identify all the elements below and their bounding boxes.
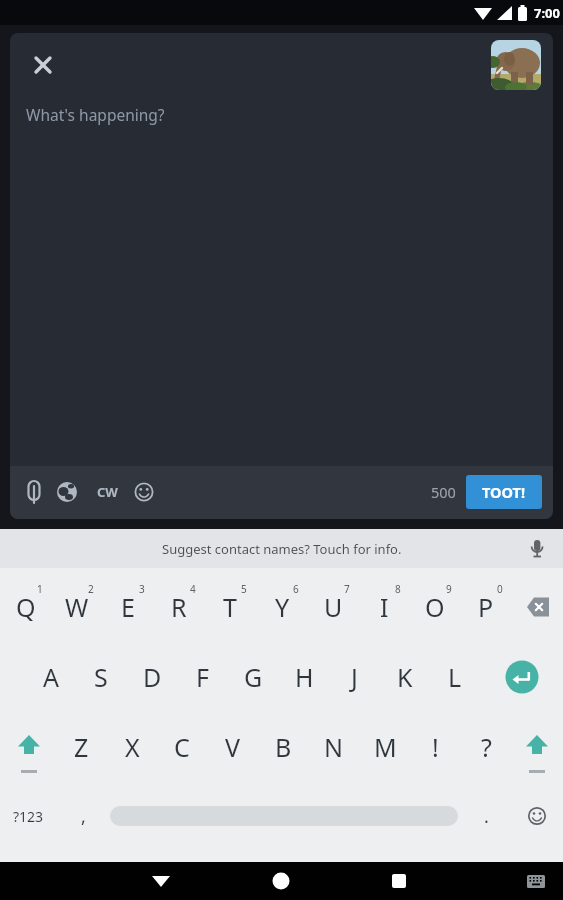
button[interactable] (497, 644, 547, 710)
button[interactable]: I (359, 574, 409, 640)
staticText: Q (16, 590, 36, 624)
staticText: T (223, 590, 237, 624)
staticText: S (94, 660, 108, 694)
staticText: 4 (190, 582, 196, 596)
button[interactable]: L (430, 644, 480, 710)
button[interactable]: C (157, 714, 207, 780)
staticText: 8 (395, 582, 401, 596)
button[interactable] (491, 40, 541, 90)
staticText: ! (432, 730, 439, 764)
button[interactable]: K (380, 644, 430, 710)
button[interactable]: R (154, 574, 204, 640)
button[interactable] (383, 865, 415, 897)
staticText: 5 (241, 582, 247, 596)
staticText: ? (481, 730, 492, 764)
button[interactable]: ! (410, 714, 460, 780)
button[interactable]: A (26, 644, 76, 710)
staticText: 6 (293, 582, 299, 596)
staticText: F (196, 660, 209, 694)
staticText: 2 (88, 582, 94, 596)
button[interactable] (521, 800, 553, 832)
button[interactable]: Z (56, 714, 106, 780)
staticText: I (380, 590, 389, 624)
button[interactable]: Y (257, 574, 307, 640)
button[interactable] (20, 478, 48, 506)
button[interactable]: , (63, 786, 103, 846)
staticText: K (397, 660, 413, 694)
staticText: M (374, 730, 397, 764)
staticText: What's happening? (26, 104, 165, 125)
button[interactable]: F (177, 644, 227, 710)
staticText: 0 (497, 582, 503, 596)
button[interactable]: Q (1, 574, 51, 640)
button[interactable] (520, 865, 552, 897)
staticText: J (351, 660, 358, 694)
staticText: 500 (431, 482, 456, 502)
button[interactable]: TOOT! (466, 475, 542, 509)
button[interactable] (265, 865, 297, 897)
button[interactable] (53, 478, 81, 506)
button[interactable]: ?123 (0, 786, 56, 846)
staticText: 7:00 (534, 4, 560, 22)
button[interactable]: E (103, 574, 153, 640)
staticText: D (143, 660, 162, 694)
button[interactable]: N (309, 714, 359, 780)
button[interactable]: Suggest contact names? Touch for info. (0, 529, 563, 568)
button[interactable]: P (461, 574, 511, 640)
button[interactable]: H (279, 644, 329, 710)
button[interactable]: O (410, 574, 460, 640)
staticText: X (125, 730, 140, 764)
button[interactable]: B (258, 714, 308, 780)
staticText: TOOT! (482, 482, 526, 502)
staticText: R (171, 590, 187, 624)
button[interactable]: S (76, 644, 126, 710)
button[interactable] (523, 535, 551, 563)
button[interactable]: J (329, 644, 379, 710)
staticText: N (324, 730, 344, 764)
button[interactable] (512, 714, 562, 780)
staticText: Z (74, 730, 89, 764)
button[interactable]: V (208, 714, 258, 780)
staticText: C (174, 730, 190, 764)
staticText: , (81, 804, 86, 829)
staticText: 9 (446, 582, 452, 596)
button[interactable] (145, 865, 177, 897)
staticText: H (295, 660, 314, 694)
staticText: 3 (139, 582, 145, 596)
staticText: U (324, 590, 343, 624)
staticText: A (43, 660, 59, 694)
staticText: P (478, 590, 494, 624)
button[interactable] (513, 574, 563, 640)
staticText: Y (275, 590, 290, 624)
button[interactable]: X (107, 714, 157, 780)
button[interactable]: W (52, 574, 102, 640)
staticText: L (448, 660, 462, 694)
staticText: 1 (37, 582, 43, 596)
staticText: . (484, 804, 489, 829)
button[interactable]: ? (461, 714, 511, 780)
staticText: Suggest contact names? Touch for info. (162, 540, 402, 558)
staticText: CW (97, 483, 118, 501)
staticText: 7 (344, 582, 350, 596)
button[interactable]: U (308, 574, 358, 640)
staticText: W (65, 590, 89, 624)
staticText: ?123 (13, 807, 44, 826)
button[interactable] (29, 51, 57, 79)
button[interactable]: T (205, 574, 255, 640)
button[interactable]: G (228, 644, 278, 710)
staticText: O (425, 590, 445, 624)
staticText: G (244, 660, 263, 694)
staticText: V (225, 730, 241, 764)
button[interactable]: M (360, 714, 410, 780)
button[interactable]: CW (93, 478, 121, 506)
button[interactable] (4, 714, 54, 780)
button[interactable]: D (127, 644, 177, 710)
staticText: E (121, 590, 135, 624)
button[interactable]: . (466, 786, 506, 846)
staticText: B (275, 730, 292, 764)
button[interactable] (130, 478, 158, 506)
